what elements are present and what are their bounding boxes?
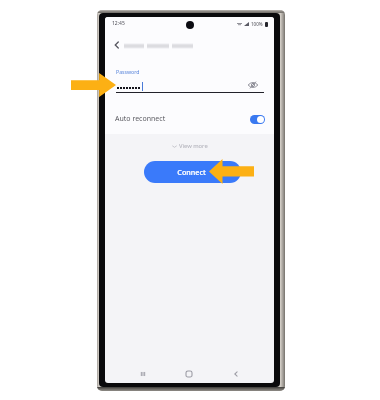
- button[interactable]: Show password: [247, 79, 259, 91]
- button[interactable]: View more: [166, 140, 214, 152]
- button[interactable]: Auto reconnect toggle: [250, 115, 265, 124]
- staticText: 12:45: [112, 20, 125, 27]
- staticText: Auto reconnect: [115, 114, 166, 124]
- staticText: Connect: [177, 167, 206, 177]
- button[interactable]: Home: [181, 366, 197, 382]
- staticText: View more: [179, 142, 208, 150]
- button[interactable]: Connect: [144, 161, 241, 183]
- button[interactable]: Back: [110, 38, 124, 52]
- button[interactable]: Back: [228, 366, 244, 382]
- staticText: Password: [116, 68, 140, 75]
- staticText: 100%: [251, 21, 263, 27]
- button[interactable]: Recents: [135, 366, 151, 382]
